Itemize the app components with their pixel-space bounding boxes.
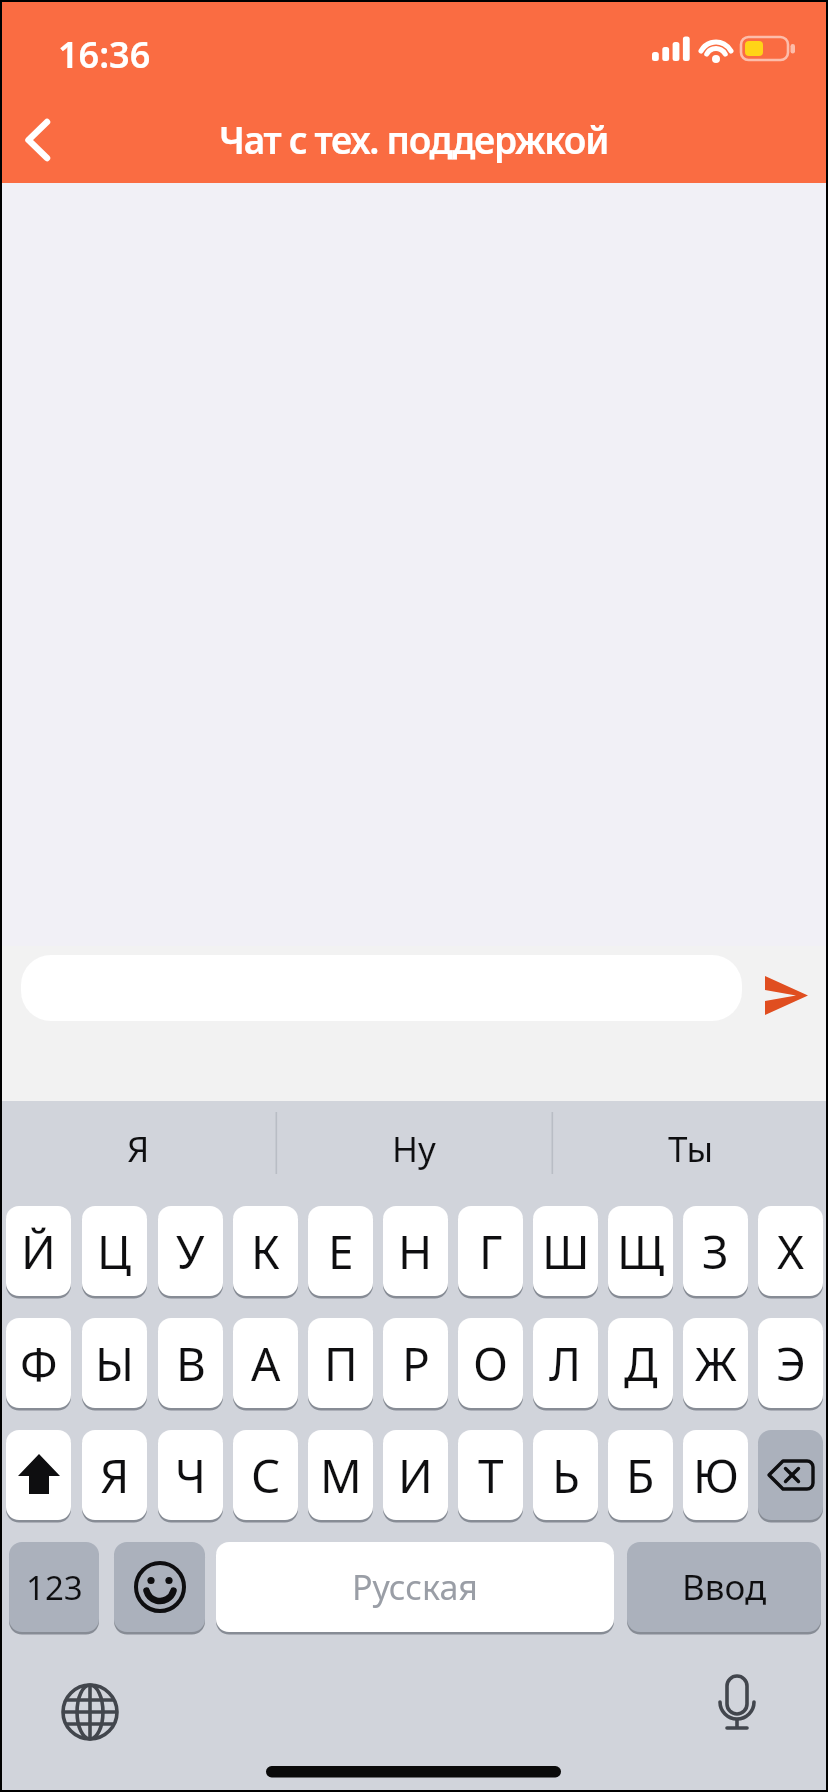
staticText: О: [473, 1332, 509, 1395]
button[interactable]: Х: [758, 1206, 823, 1296]
staticText: Щ: [617, 1220, 665, 1283]
button[interactable]: О: [458, 1318, 523, 1408]
button[interactable]: В: [158, 1318, 223, 1408]
button[interactable]: Ц: [82, 1206, 147, 1296]
button[interactable]: Л: [533, 1318, 598, 1408]
button[interactable]: С: [233, 1430, 298, 1520]
button[interactable]: Г: [458, 1206, 523, 1296]
button[interactable]: Я: [82, 1430, 147, 1520]
staticText: Ж: [695, 1332, 737, 1395]
button[interactable]: Русская: [216, 1542, 614, 1632]
button[interactable]: П: [308, 1318, 373, 1408]
staticText: Ну: [392, 1125, 436, 1173]
staticText: Г: [479, 1220, 503, 1283]
staticText: К: [251, 1220, 280, 1283]
staticText: Е: [328, 1220, 354, 1283]
button[interactable]: [114, 1542, 205, 1632]
button[interactable]: Н: [383, 1206, 448, 1296]
button[interactable]: Б: [608, 1430, 673, 1520]
staticText: У: [176, 1220, 205, 1283]
button[interactable]: З: [683, 1206, 748, 1296]
staticText: Ввод: [682, 1563, 767, 1611]
staticText: Ц: [97, 1220, 132, 1283]
staticText: Ф: [20, 1332, 58, 1395]
staticText: Э: [776, 1332, 806, 1395]
button[interactable]: Д: [608, 1318, 673, 1408]
staticText: Д: [624, 1332, 658, 1395]
staticText: Б: [626, 1444, 655, 1507]
staticText: Ю: [693, 1444, 739, 1507]
button[interactable]: Щ: [608, 1206, 673, 1296]
staticText: Ш: [542, 1220, 590, 1283]
button[interactable]: Ф: [6, 1318, 71, 1408]
staticText: Ы: [95, 1332, 135, 1395]
button[interactable]: [707, 1668, 767, 1728]
staticText: Я: [100, 1444, 130, 1507]
button[interactable]: Р: [383, 1318, 448, 1408]
staticText: Ты: [668, 1125, 713, 1173]
staticText: Л: [549, 1332, 582, 1395]
staticText: В: [176, 1332, 206, 1395]
button[interactable]: [758, 1430, 823, 1520]
button[interactable]: Е: [308, 1206, 373, 1296]
staticText: Ь: [552, 1444, 580, 1507]
button[interactable]: Т: [458, 1430, 523, 1520]
button[interactable]: У: [158, 1206, 223, 1296]
button[interactable]: Ж: [683, 1318, 748, 1408]
staticText: Х: [777, 1220, 805, 1283]
staticText: Й: [21, 1220, 56, 1283]
button[interactable]: Ь: [533, 1430, 598, 1520]
button[interactable]: Я: [0, 1101, 276, 1196]
staticText: Чат с тех. поддержкой: [219, 114, 609, 164]
button[interactable]: Ввод: [627, 1542, 821, 1632]
button[interactable]: Ш: [533, 1206, 598, 1296]
button[interactable]: 123: [9, 1542, 99, 1632]
button[interactable]: [10, 105, 80, 175]
staticText: 123: [26, 1565, 83, 1610]
button[interactable]: А: [233, 1318, 298, 1408]
button[interactable]: Ю: [683, 1430, 748, 1520]
button[interactable]: [758, 970, 818, 1030]
staticText: Я: [127, 1125, 150, 1173]
staticText: М: [320, 1444, 362, 1507]
staticText: Н: [398, 1220, 433, 1283]
staticText: Р: [402, 1332, 430, 1395]
button[interactable]: [60, 1682, 120, 1742]
staticText: Т: [478, 1444, 504, 1507]
staticText: Русская: [352, 1564, 478, 1610]
button[interactable]: [6, 1430, 71, 1520]
button[interactable]: Ы: [82, 1318, 147, 1408]
button[interactable]: М: [308, 1430, 373, 1520]
staticText: А: [251, 1332, 281, 1395]
button[interactable]: Ты: [552, 1101, 828, 1196]
staticText: Ч: [175, 1444, 206, 1507]
staticText: П: [324, 1332, 358, 1395]
button[interactable]: И: [383, 1430, 448, 1520]
button[interactable]: Ну: [276, 1101, 552, 1196]
staticText: С: [251, 1444, 281, 1507]
button[interactable]: Э: [758, 1318, 823, 1408]
staticText: З: [702, 1220, 729, 1283]
staticText: И: [398, 1444, 433, 1507]
button[interactable]: Ч: [158, 1430, 223, 1520]
button[interactable]: К: [233, 1206, 298, 1296]
staticText: 16:36: [58, 30, 151, 79]
button[interactable]: Й: [6, 1206, 71, 1296]
